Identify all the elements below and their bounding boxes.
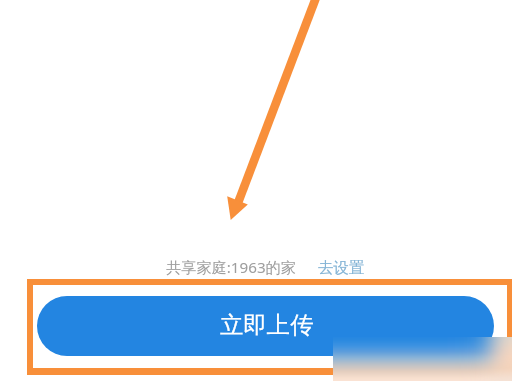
button[interactable]: 去设置 — [318, 258, 365, 278]
other: Annotation arrow — [0, 0, 512, 381]
staticText: 共享家庭:1963的家 — [166, 257, 296, 278]
button[interactable]: 立即上传 — [37, 296, 494, 356]
staticText: 立即上传 — [220, 310, 314, 339]
staticText: 去设置 — [318, 258, 365, 278]
